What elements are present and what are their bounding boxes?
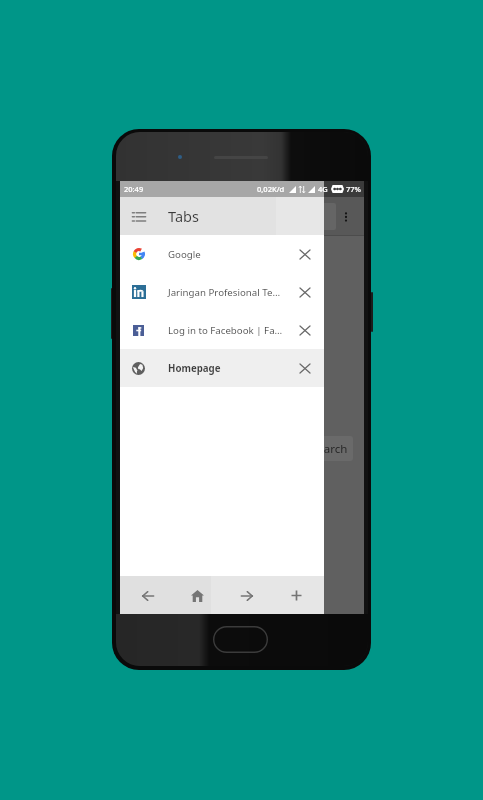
button[interactable]: Close tab [286, 311, 324, 349]
button[interactable]: Home [176, 577, 218, 614]
staticText: 4G [318, 184, 328, 194]
button[interactable]: Log in to Facebook | Fa… [120, 311, 324, 349]
staticText: Homepage [168, 362, 286, 375]
staticText: Search [311, 441, 348, 457]
button[interactable]: Tab list [126, 197, 152, 235]
staticText: Tabs [168, 206, 199, 226]
button[interactable]: Google [120, 235, 324, 273]
button[interactable]: Close tab [286, 349, 324, 387]
button[interactable]: More options [335, 206, 357, 228]
staticText: 77% [346, 184, 361, 194]
button[interactable]: Close tab [286, 235, 324, 273]
staticText: Google [168, 248, 286, 261]
staticText: 0,02K/d [257, 184, 285, 194]
button[interactable]: Search [306, 436, 353, 461]
staticText: Jaringan Profesional Te… [168, 286, 286, 299]
button[interactable]: Close tab [286, 273, 324, 311]
button[interactable]: Forward [226, 577, 268, 614]
staticText: Log in to Facebook | Fa… [168, 324, 286, 337]
button[interactable]: Jaringan Profesional Te… [120, 273, 324, 311]
staticText: 20:49 [124, 184, 144, 194]
button[interactable]: Back [127, 577, 169, 614]
button[interactable]: Homepage [120, 349, 324, 387]
button[interactable]: New tab [275, 577, 317, 614]
